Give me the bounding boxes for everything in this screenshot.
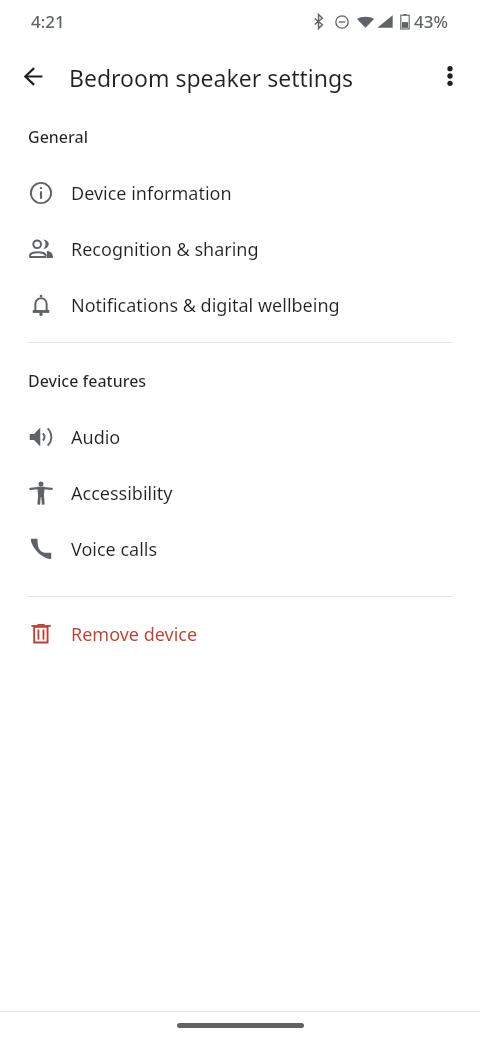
- button[interactable]: Back: [11, 54, 55, 98]
- staticText: Device information: [71, 181, 232, 206]
- button[interactable]: Audio: [0, 409, 480, 465]
- staticText: Device features: [28, 370, 147, 392]
- staticText: 4:21: [31, 10, 65, 33]
- button[interactable]: Remove device: [0, 606, 480, 662]
- button[interactable]: Voice calls: [0, 521, 480, 577]
- button[interactable]: More options: [428, 54, 472, 98]
- button[interactable]: Recognition & sharing: [0, 221, 480, 277]
- staticText: General: [28, 126, 88, 148]
- staticText: Remove device: [71, 622, 198, 647]
- staticText: Audio: [71, 425, 121, 450]
- button[interactable]: Device information: [0, 165, 480, 221]
- button[interactable]: Accessibility: [0, 465, 480, 521]
- staticText: Bedroom speaker settings: [69, 62, 354, 93]
- staticText: 43%: [414, 10, 448, 33]
- staticText: Recognition & sharing: [71, 237, 259, 262]
- button[interactable]: Notifications & digital wellbeing: [0, 277, 480, 333]
- staticText: Voice calls: [71, 537, 158, 562]
- staticText: Accessibility: [71, 481, 173, 506]
- staticText: Notifications & digital wellbeing: [71, 293, 340, 318]
